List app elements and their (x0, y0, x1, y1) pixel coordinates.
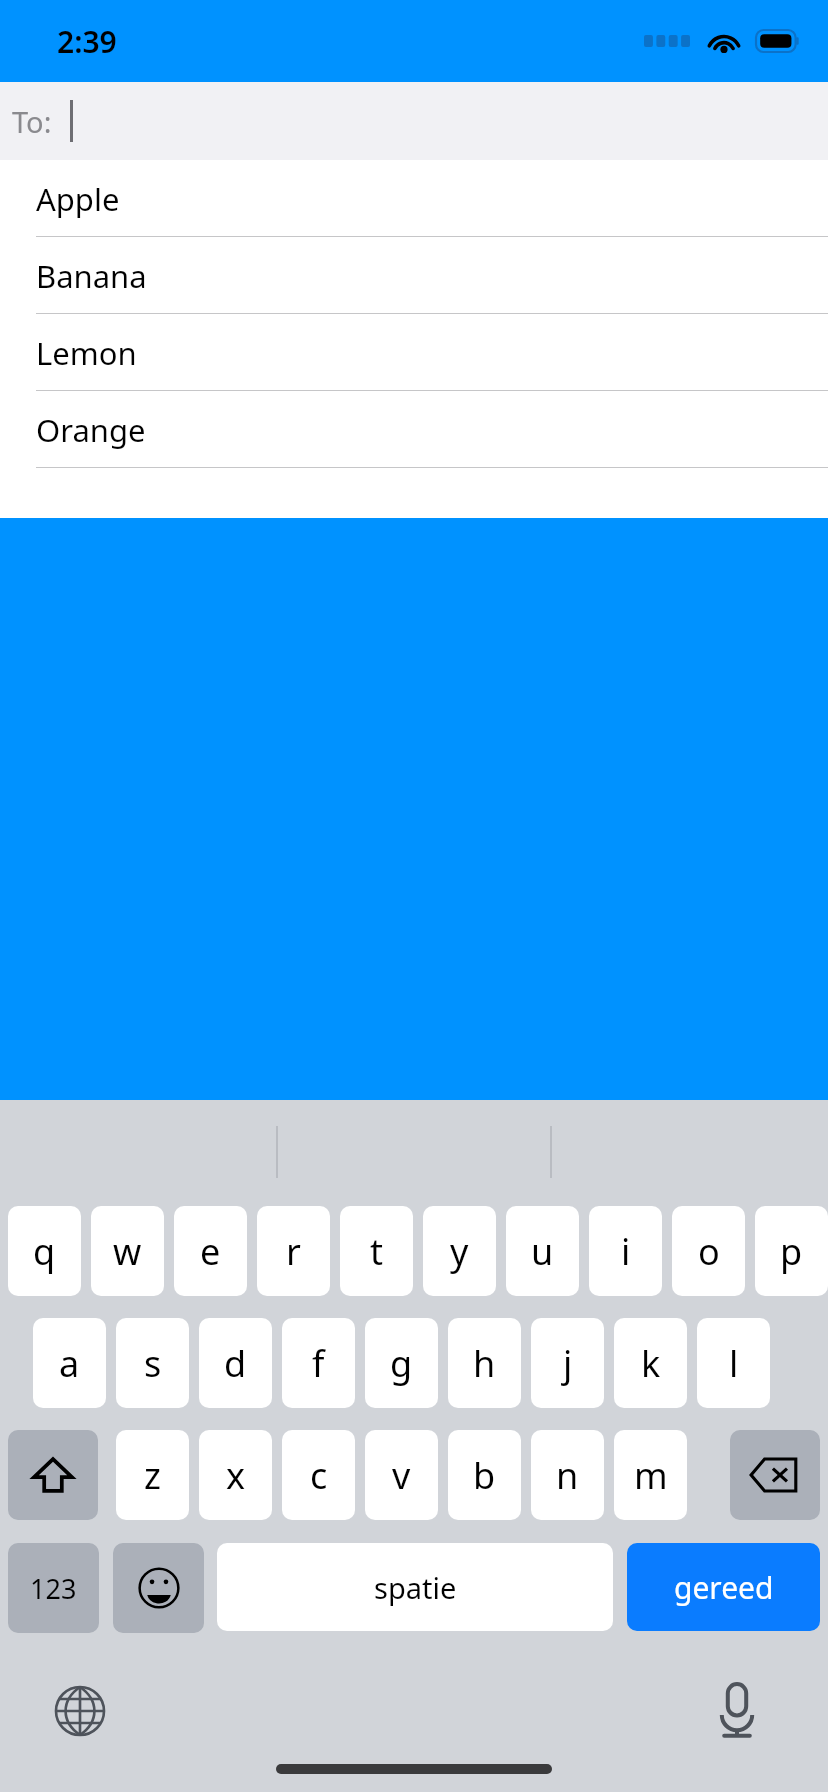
button[interactable]: spatie (217, 1543, 613, 1631)
staticText: i (621, 1227, 631, 1276)
button[interactable]: j (531, 1318, 604, 1408)
button[interactable]: g (365, 1318, 438, 1408)
button[interactable]: 123 (8, 1543, 99, 1633)
staticText: Apple (36, 178, 120, 220)
button[interactable]: u (506, 1206, 579, 1296)
button[interactable]: z (116, 1430, 189, 1520)
staticText: To: (12, 102, 52, 141)
staticText: g (390, 1339, 413, 1388)
staticText: Lemon (36, 332, 137, 374)
button[interactable]: l (697, 1318, 770, 1408)
staticText: Banana (36, 255, 147, 297)
staticText: p (780, 1227, 803, 1276)
button[interactable]: Emoji (113, 1543, 204, 1633)
staticText: o (698, 1227, 720, 1276)
button[interactable]: gereed (627, 1543, 820, 1631)
staticText: spatie (374, 1568, 457, 1607)
button[interactable]: b (448, 1430, 521, 1520)
staticText: h (473, 1339, 496, 1388)
button[interactable]: i (589, 1206, 662, 1296)
button[interactable]: o (672, 1206, 745, 1296)
button[interactable]: q (8, 1206, 81, 1296)
staticText: s (144, 1339, 162, 1388)
staticText: x (226, 1451, 246, 1500)
staticText: b (473, 1451, 496, 1500)
button[interactable]: p (755, 1206, 828, 1296)
button[interactable]: Dictate (703, 1677, 771, 1745)
button[interactable]: a (33, 1318, 106, 1408)
button[interactable]: Lemon (0, 314, 828, 391)
button[interactable]: Orange (0, 391, 828, 468)
staticText: a (59, 1339, 80, 1388)
staticText: r (286, 1227, 301, 1276)
staticText: z (144, 1451, 161, 1500)
staticText: l (729, 1339, 739, 1388)
button[interactable]: Shift (8, 1430, 98, 1520)
button[interactable]: d (199, 1318, 272, 1408)
staticText: j (563, 1339, 573, 1388)
staticText: v (392, 1451, 411, 1500)
staticText: t (370, 1227, 383, 1276)
staticText: f (312, 1339, 325, 1388)
button[interactable]: m (614, 1430, 687, 1520)
staticText: e (200, 1227, 221, 1276)
button[interactable]: k (614, 1318, 687, 1408)
button[interactable]: c (282, 1430, 355, 1520)
button[interactable]: r (257, 1206, 330, 1296)
button[interactable]: Banana (0, 237, 828, 314)
button[interactable]: To: (0, 82, 828, 160)
staticText: m (634, 1451, 668, 1500)
button[interactable]: Backspace (730, 1430, 820, 1520)
button[interactable]: Change keyboard (46, 1677, 114, 1745)
button[interactable]: w (91, 1206, 164, 1296)
button[interactable]: f (282, 1318, 355, 1408)
staticText: c (310, 1451, 328, 1500)
button[interactable]: e (174, 1206, 247, 1296)
staticText: 2:39 (57, 21, 117, 62)
staticText: gereed (674, 1567, 774, 1608)
staticText: 123 (30, 1570, 77, 1607)
button[interactable]: h (448, 1318, 521, 1408)
staticText: w (113, 1227, 142, 1276)
button[interactable]: t (340, 1206, 413, 1296)
staticText: Orange (36, 409, 146, 451)
button[interactable]: v (365, 1430, 438, 1520)
staticText: k (641, 1339, 661, 1388)
button[interactable]: y (423, 1206, 496, 1296)
button[interactable]: x (199, 1430, 272, 1520)
button[interactable]: n (531, 1430, 604, 1520)
staticText: n (556, 1451, 579, 1500)
staticText: q (33, 1227, 56, 1276)
staticText: u (531, 1227, 554, 1276)
button[interactable]: s (116, 1318, 189, 1408)
staticText: y (450, 1227, 469, 1276)
button[interactable]: Apple (0, 160, 828, 237)
staticText: d (224, 1339, 247, 1388)
